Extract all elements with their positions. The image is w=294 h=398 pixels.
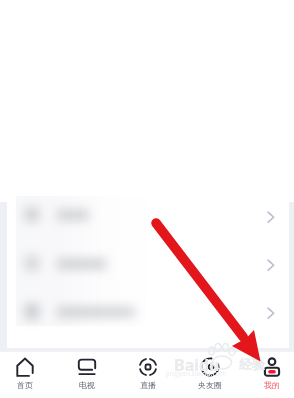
button[interactable]: 电视 [60,357,114,397]
button[interactable]: 直播 [121,357,175,397]
staticText: 我的 [264,380,280,390]
button[interactable]: 首页 [0,357,52,397]
button[interactable]: Setting row 1 [7,191,289,239]
staticText: jingyan.baidu.com [166,369,227,379]
button[interactable]: 央友圈 [183,357,237,397]
staticText: 直播 [140,380,156,390]
staticText: 央友圈 [198,380,222,390]
staticText: 首页 [17,380,33,390]
staticText: 经验 [239,356,265,372]
button[interactable]: 我的 [245,357,294,397]
staticText: Baidu [174,354,220,376]
staticText: 电视 [79,380,95,390]
button[interactable]: Setting row 3 [7,288,289,336]
button[interactable]: Setting row 2 [7,240,289,288]
